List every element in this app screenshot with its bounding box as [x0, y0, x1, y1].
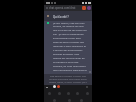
- button[interactable]: [76, 92, 79, 95]
- staticText: Qui t'a créé ?: [53, 15, 69, 19]
- button[interactable]: Google: [53, 85, 56, 88]
- button[interactable]: Lens: [57, 85, 60, 88]
- staticText: Je suis Mistral, créé par mon associé, d…: [53, 21, 87, 74]
- button[interactable]: [67, 92, 70, 95]
- button[interactable]: [48, 92, 51, 95]
- button[interactable]: Qui t'a créé ?: [44, 11, 92, 21]
- button[interactable]: chat.openai.com/chat: [44, 5, 92, 11]
- button[interactable]: [53, 99, 56, 102]
- button[interactable]: [80, 99, 83, 102]
- staticText: Free Research Preview. ChatGPT may produ…: [47, 75, 89, 86]
- button[interactable]: [86, 92, 89, 95]
- staticText: chat.openai.com/chat: [49, 6, 76, 10]
- button[interactable]: [58, 92, 61, 95]
- button[interactable]: [68, 99, 71, 102]
- button[interactable]: Je suis Mistral, créé par mon associé, d…: [44, 21, 92, 74]
- button[interactable]: Account: [87, 6, 91, 10]
- button[interactable]: Tabs: [82, 6, 86, 10]
